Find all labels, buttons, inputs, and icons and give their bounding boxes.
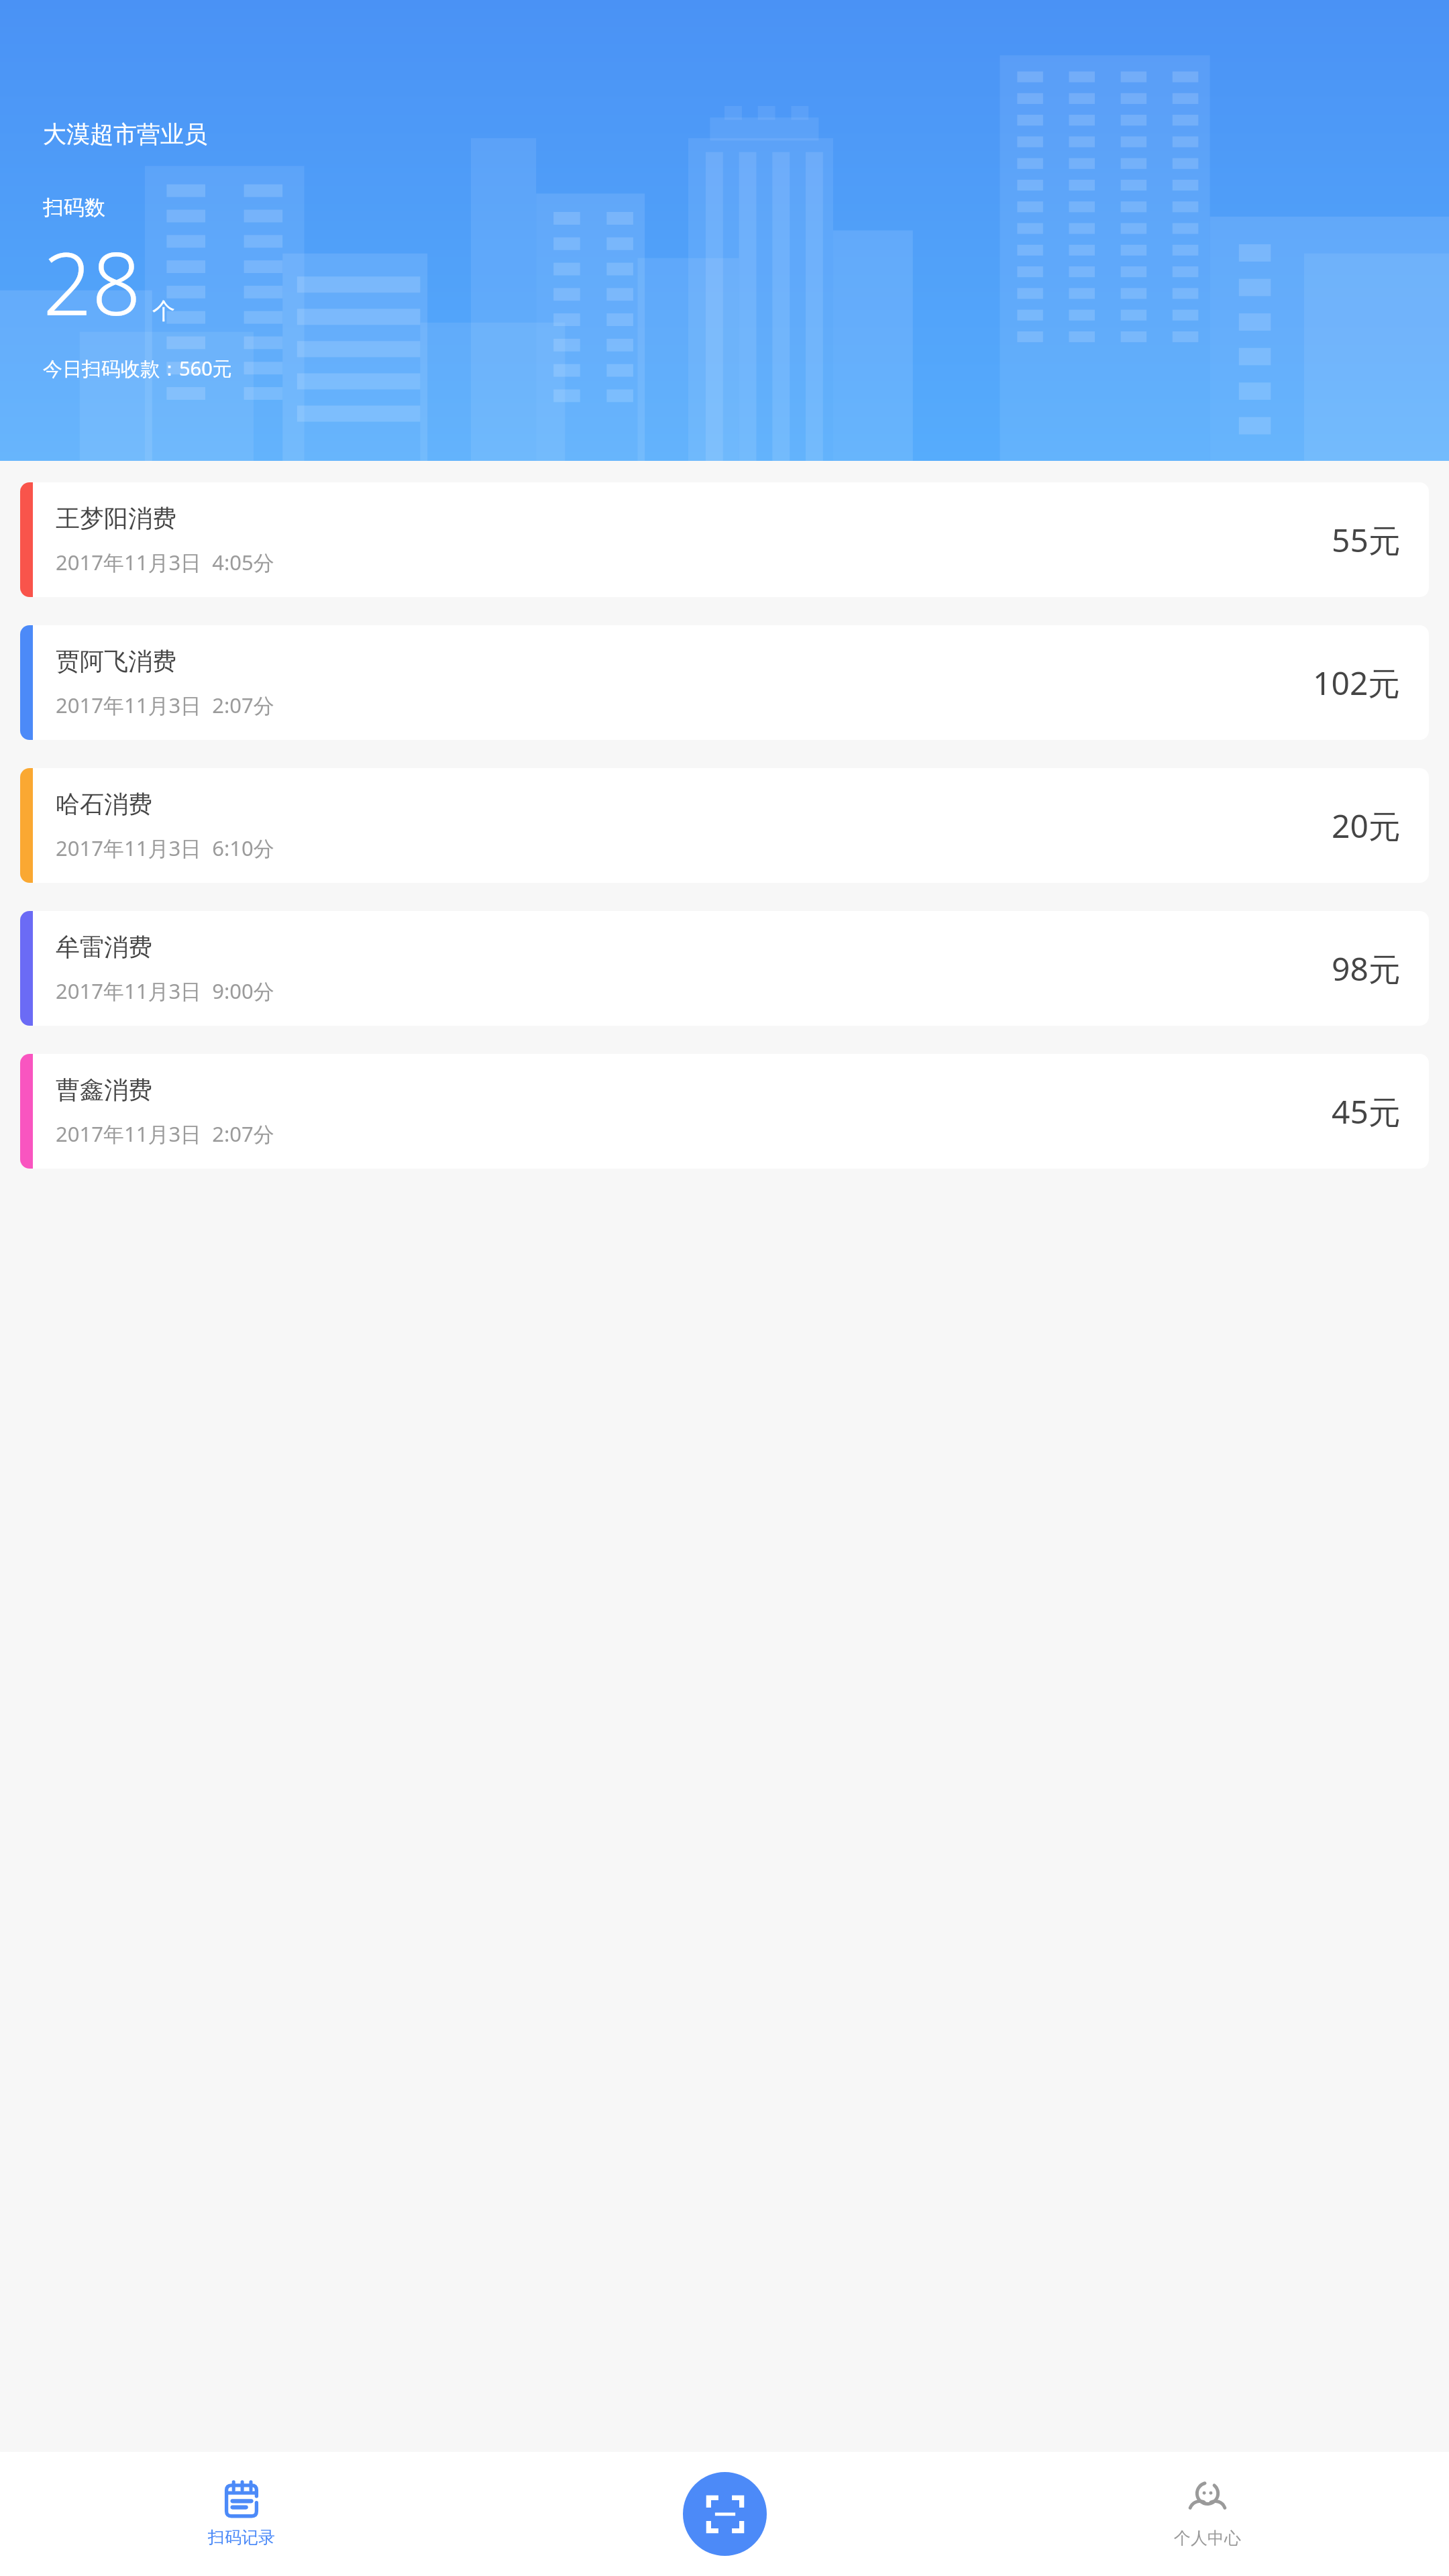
button[interactable]: 贾阿飞消费 [20, 625, 1429, 740]
staticText: 2017年11月3日 2:07分 [56, 1120, 274, 1148]
button[interactable]: 曹鑫消费 [20, 1054, 1429, 1169]
staticText: 20元 [1332, 804, 1401, 848]
staticText: 2017年11月3日 2:07分 [56, 691, 274, 719]
button[interactable]: 牟雷消费 [20, 911, 1429, 1026]
staticText: 个人中心 [1174, 2528, 1241, 2548]
staticText: 2017年11月3日 9:00分 [56, 977, 274, 1005]
button[interactable]: 个人中心 [966, 2452, 1449, 2576]
staticText: 102元 [1313, 661, 1401, 705]
button[interactable]: 哈石消费 [20, 768, 1429, 883]
staticText: 45元 [1332, 1089, 1401, 1134]
staticText: 2017年11月3日 6:10分 [56, 834, 274, 862]
button[interactable]: 王梦阳消费 [20, 482, 1429, 597]
staticText: 今日扫码收款：560元 [43, 355, 232, 382]
staticText: 2017年11月3日 4:05分 [56, 548, 274, 576]
staticText: 牟雷消费 [56, 932, 152, 962]
staticText: 贾阿飞消费 [56, 646, 176, 676]
button[interactable]: 扫码 [683, 2472, 767, 2556]
button[interactable]: 扫码记录 [0, 2452, 483, 2576]
staticText: 曹鑫消费 [56, 1075, 152, 1105]
staticText: 扫码数 [43, 195, 105, 221]
staticText: 28 [43, 223, 142, 340]
staticText: 55元 [1332, 518, 1401, 562]
staticText: 王梦阳消费 [56, 503, 176, 533]
staticText: 个 [152, 297, 175, 325]
staticText: 哈石消费 [56, 789, 152, 819]
staticText: 大漠超市营业员 [43, 119, 207, 149]
staticText: 扫码记录 [208, 2527, 275, 2548]
staticText: 98元 [1332, 947, 1401, 991]
